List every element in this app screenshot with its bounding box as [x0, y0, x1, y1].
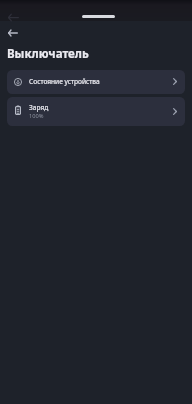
- staticText: Заряд: [29, 103, 49, 112]
- staticText: 100%: [29, 112, 44, 120]
- staticText: Состояние устройства: [29, 77, 100, 86]
- button[interactable]: Состояние устройства: [7, 70, 185, 94]
- button[interactable]: Back: [3, 23, 23, 43]
- other: Open: [173, 78, 177, 85]
- button[interactable]: Заряд: [7, 97, 185, 126]
- staticText: Выключатель: [7, 46, 89, 62]
- other: Open: [173, 108, 177, 115]
